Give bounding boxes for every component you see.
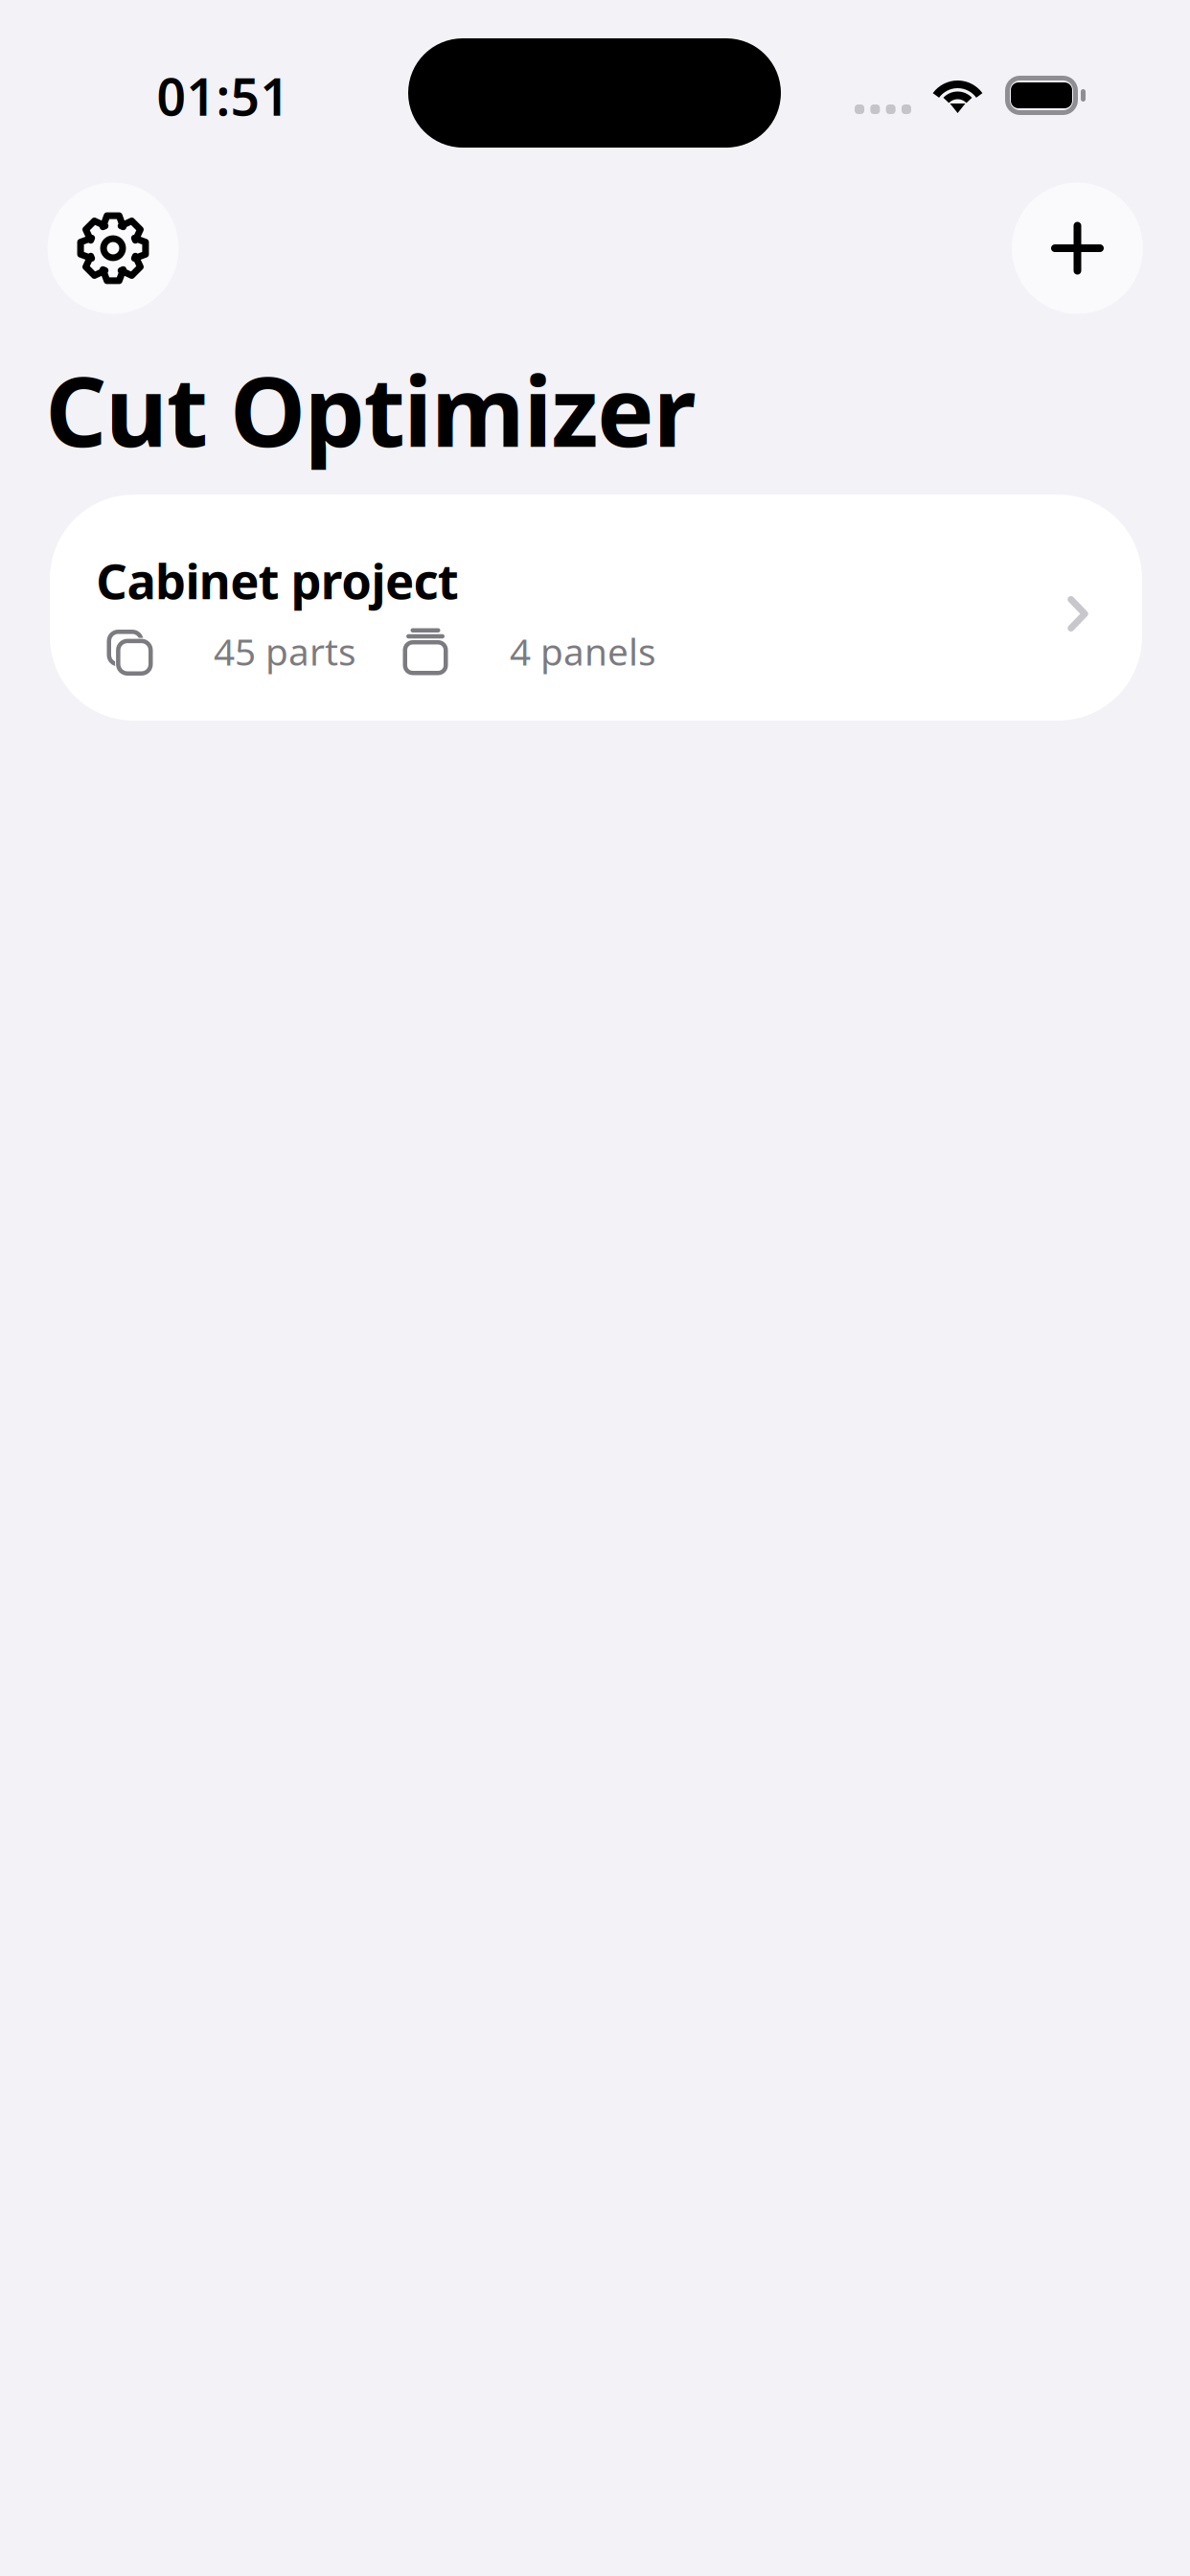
staticText: Cabinet project — [96, 548, 459, 613]
button[interactable]: Settings — [47, 183, 179, 314]
staticText: 01:51 — [157, 62, 290, 130]
staticText: Cut Optimizer — [45, 346, 696, 473]
staticText: 4 panels — [510, 627, 656, 676]
button[interactable]: New project — [1012, 183, 1143, 314]
staticText: 45 parts — [214, 627, 356, 676]
button[interactable]: Cabinet project — [50, 494, 1142, 721]
